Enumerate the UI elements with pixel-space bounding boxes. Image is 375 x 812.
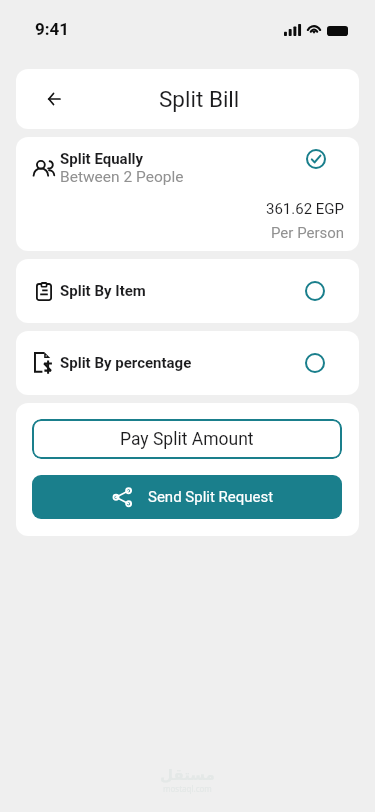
button[interactable]: Split By percentage (16, 331, 359, 395)
staticText: Split By Item (60, 282, 146, 300)
staticText: Split By percentage (60, 354, 192, 372)
staticText: Between 2 People (60, 168, 184, 186)
button[interactable]: Send Split Request (32, 475, 342, 519)
staticText: Send Split Request (148, 488, 274, 506)
staticText: 361.62 EGP (266, 200, 345, 218)
button[interactable]: Pay Split Amount (32, 419, 342, 459)
staticText: Pay Split Amount (120, 429, 254, 450)
staticText: Split Equally (60, 150, 144, 168)
staticText: مستقل (160, 766, 215, 783)
button[interactable]: Back (38, 83, 70, 115)
button[interactable]: Split By Item (16, 259, 359, 323)
staticText: mostaql.com (163, 783, 212, 794)
staticText: 9:41 (35, 19, 70, 39)
button[interactable]: Split Equally (16, 137, 359, 251)
staticText: Per Person (271, 224, 345, 242)
staticText: Split Bill (159, 86, 240, 112)
